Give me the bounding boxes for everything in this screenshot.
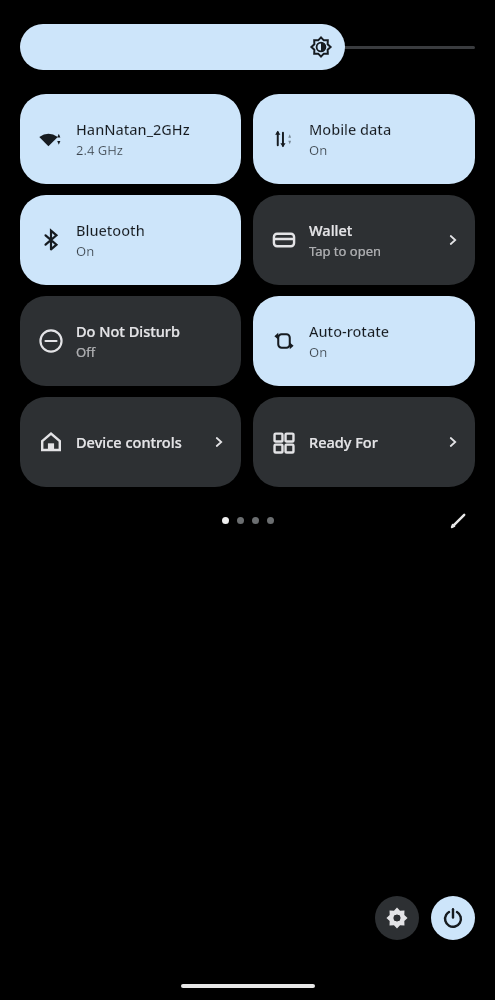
staticText: 2.4 GHz [76,141,123,159]
button[interactable]: HanNatan_2GHz [20,94,241,184]
staticText: Ready For [309,432,378,452]
staticText: Bluetooth [76,220,145,240]
button[interactable]: Bluetooth [20,195,241,285]
staticText: Wallet [309,220,353,240]
button[interactable]: Auto-rotate [253,296,475,386]
staticText: Off [76,343,96,361]
staticText: Do Not Disturb [76,321,180,341]
button[interactable]: Brightness [20,24,475,70]
button[interactable]: Device controls [20,397,241,487]
button[interactable]: Do Not Disturb [20,296,241,386]
staticText: Device controls [76,432,182,452]
staticText: Tap to open [309,242,382,260]
button[interactable]: Settings [375,896,419,940]
button[interactable]: Mobile data [253,94,475,184]
staticText: On [309,141,328,159]
button[interactable]: Edit tiles [443,505,473,535]
staticText: On [309,343,328,361]
staticText: Auto-rotate [309,321,390,341]
button[interactable]: Power [431,896,475,940]
button[interactable]: Ready For [253,397,475,487]
staticText: Mobile data [309,119,392,139]
staticText: HanNatan_2GHz [76,119,190,139]
staticText: On [76,242,95,260]
button[interactable]: Wallet [253,195,475,285]
